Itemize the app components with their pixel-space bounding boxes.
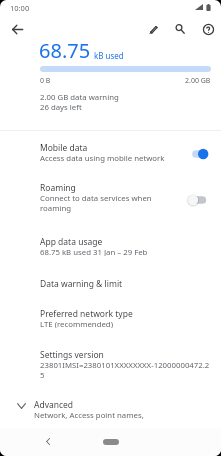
button[interactable]: Search [169,18,191,40]
staticText: Advanced [34,399,74,411]
staticText: Settings version [40,349,104,361]
button[interactable]: Roaming [0,179,221,215]
staticText: 26 days left [40,102,82,113]
button[interactable]: Help [197,18,219,40]
staticText: 68.75 [39,37,91,64]
button[interactable]: Off [188,192,210,208]
button[interactable]: Data warning & limit [0,275,221,289]
staticText: LTE (recommended) [40,319,114,328]
staticText: Mobile data [40,142,88,154]
button[interactable]: Settings version [0,346,221,380]
staticText: App data usage [40,236,103,248]
staticText: Roaming [40,182,76,194]
button[interactable]: App data usage [0,233,221,257]
staticText: 10:00 [10,3,30,13]
button[interactable]: Home [103,439,119,445]
button[interactable]: On [188,146,210,162]
staticText: Preferred network type [40,308,133,320]
staticText: 23801IMSI=2380101XXXXXXXX-12000000472.25 [40,360,211,379]
staticText: 68.75 kB used 31 Jan – 29 Feb [40,247,148,256]
staticText: Network, Access point names, [34,410,144,421]
staticText: 2.00 GB [185,76,211,86]
staticText: 0 B [40,76,51,86]
staticText: Connect to data services when roaming [40,193,167,213]
button[interactable]: Advanced [0,396,221,424]
button[interactable]: Back [38,431,58,451]
button[interactable]: Edit [142,18,164,40]
button[interactable]: Back [6,18,28,40]
button[interactable]: Mobile data [0,139,221,165]
staticText: 2.00 GB data warning [40,92,119,103]
staticText: Data warning & limit [40,278,123,289]
staticText: kB used [94,50,124,61]
button[interactable]: Preferred network type [0,305,221,329]
staticText: Access data using mobile network [40,153,165,164]
